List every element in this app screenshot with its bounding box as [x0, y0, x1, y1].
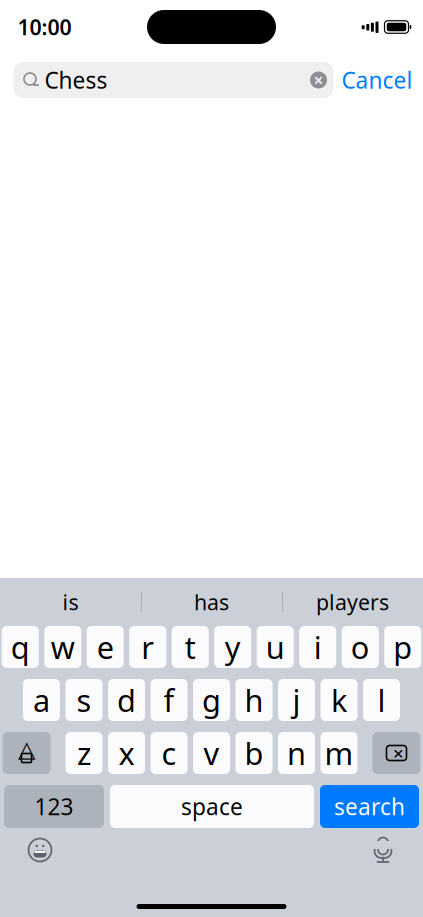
staticText: has [194, 588, 229, 616]
button[interactable]: Clear text [305, 64, 331, 96]
staticText: o [351, 627, 370, 667]
button[interactable]: Emoji [18, 830, 62, 870]
button[interactable]: d [108, 679, 145, 721]
staticText: p [393, 627, 412, 667]
button[interactable]: x [108, 732, 145, 774]
staticText: space [181, 791, 243, 821]
staticText: 10:00 [17, 13, 71, 41]
staticText: g [202, 680, 221, 720]
button[interactable]: k [320, 679, 357, 721]
button[interactable]: i [299, 626, 336, 668]
button[interactable]: search [320, 785, 419, 828]
button[interactable]: z [65, 732, 102, 774]
button[interactable]: space [110, 785, 314, 828]
staticText: u [266, 627, 285, 667]
staticText: x [118, 733, 134, 773]
staticText: 123 [34, 791, 73, 821]
staticText: a [33, 680, 50, 720]
staticText: × [393, 741, 404, 765]
button[interactable]: r [129, 626, 166, 668]
staticText: i [314, 627, 322, 667]
staticText: e [97, 627, 114, 667]
staticText: b [244, 733, 263, 773]
staticText: z [77, 733, 91, 773]
button[interactable]: p [384, 626, 421, 668]
staticText: y [225, 627, 241, 667]
staticText: n [287, 733, 306, 773]
button[interactable]: u [257, 626, 294, 668]
staticText: w [51, 627, 75, 667]
staticText: v [203, 733, 219, 773]
button[interactable]: y [214, 626, 251, 668]
staticText: r [141, 627, 154, 667]
staticText: j [292, 680, 300, 720]
button[interactable]: l [363, 679, 400, 721]
button[interactable]: n [278, 732, 315, 774]
button[interactable]: q [2, 626, 39, 668]
staticText: s [76, 680, 91, 720]
button[interactable]: o [342, 626, 379, 668]
staticText: is [62, 588, 78, 616]
staticText: Chess [44, 65, 107, 95]
button[interactable]: has [141, 580, 282, 624]
staticText: players [316, 588, 389, 616]
staticText: × [313, 68, 323, 91]
button[interactable]: a [23, 679, 60, 721]
staticText: △ [18, 736, 35, 762]
button[interactable]: 123 [4, 785, 104, 828]
staticText: c [161, 733, 176, 773]
button[interactable]: h [235, 679, 272, 721]
button[interactable]: f [150, 679, 187, 721]
button[interactable]: m [320, 732, 357, 774]
staticText: q [11, 627, 30, 667]
button[interactable]: Delete [372, 732, 420, 774]
button[interactable]: g [193, 679, 230, 721]
button[interactable]: e [87, 626, 124, 668]
staticText: h [244, 680, 263, 720]
staticText: d [117, 680, 136, 720]
button[interactable]: v [193, 732, 230, 774]
button[interactable]: is [0, 580, 141, 624]
staticText: f [163, 680, 174, 720]
button[interactable]: Shift [2, 732, 50, 774]
button[interactable]: w [44, 626, 81, 668]
button[interactable]: s [65, 679, 102, 721]
staticText: t [185, 627, 196, 667]
button[interactable]: c [150, 732, 187, 774]
staticText: m [324, 733, 353, 773]
button[interactable]: t [172, 626, 209, 668]
staticText: search [334, 791, 405, 821]
button[interactable]: Dictation [361, 830, 405, 870]
button[interactable]: Cancel [333, 62, 420, 98]
button[interactable]: players [282, 580, 423, 624]
staticText: Cancel [341, 65, 412, 95]
button[interactable]: b [235, 732, 272, 774]
staticText: k [331, 680, 347, 720]
button[interactable]: j [278, 679, 315, 721]
staticText: l [377, 680, 385, 720]
